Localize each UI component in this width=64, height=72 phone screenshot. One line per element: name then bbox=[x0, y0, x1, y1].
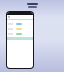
button[interactable] bbox=[7, 22, 33, 25]
button[interactable] bbox=[7, 27, 33, 30]
button[interactable] bbox=[7, 32, 33, 35]
